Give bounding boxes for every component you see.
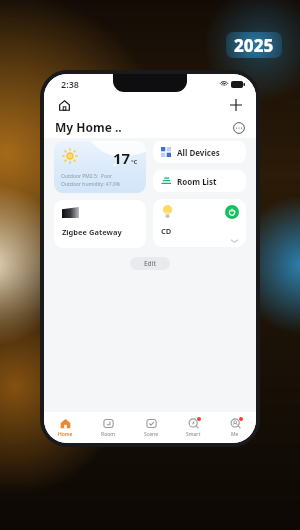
button[interactable]: 17	[54, 141, 146, 193]
staticText: Me	[231, 431, 239, 438]
staticText: All Devices	[177, 147, 220, 158]
staticText: My Home ..	[55, 119, 122, 135]
staticText: 17	[113, 148, 131, 168]
button[interactable]: Edit	[130, 257, 170, 270]
button[interactable]: Me	[214, 412, 256, 443]
button[interactable]: Home	[44, 412, 87, 443]
staticText: Smart	[186, 431, 201, 438]
button[interactable]: Zigbee Gateway	[54, 200, 146, 248]
button[interactable]: Toggle power	[153, 199, 246, 247]
staticText: 2025	[234, 34, 274, 57]
staticText: °C	[131, 158, 138, 166]
button[interactable]: All Devices	[153, 141, 246, 163]
staticText: Room List	[177, 176, 217, 187]
button[interactable]: Room	[87, 412, 130, 443]
button[interactable]: Room List	[153, 170, 246, 192]
staticText: Zigbee Gateway	[62, 227, 122, 237]
staticText: CD	[161, 226, 172, 236]
button[interactable]: More options	[231, 120, 246, 135]
button[interactable]: Toggle power	[225, 205, 239, 219]
staticText: Home	[58, 431, 73, 438]
staticText: Outdoor PM2.5: Poor	[61, 173, 112, 180]
button[interactable]: Scene	[130, 412, 172, 443]
staticText: Scene	[144, 431, 159, 438]
button[interactable]: Home	[55, 96, 73, 114]
staticText: Edit	[144, 259, 156, 268]
button[interactable]: Add device	[227, 96, 245, 114]
button[interactable]: Smart	[172, 412, 214, 443]
staticText: Outdoor humidity: 47.0%	[61, 181, 120, 188]
staticText: 2:38	[61, 78, 79, 90]
staticText: Room	[101, 431, 116, 438]
